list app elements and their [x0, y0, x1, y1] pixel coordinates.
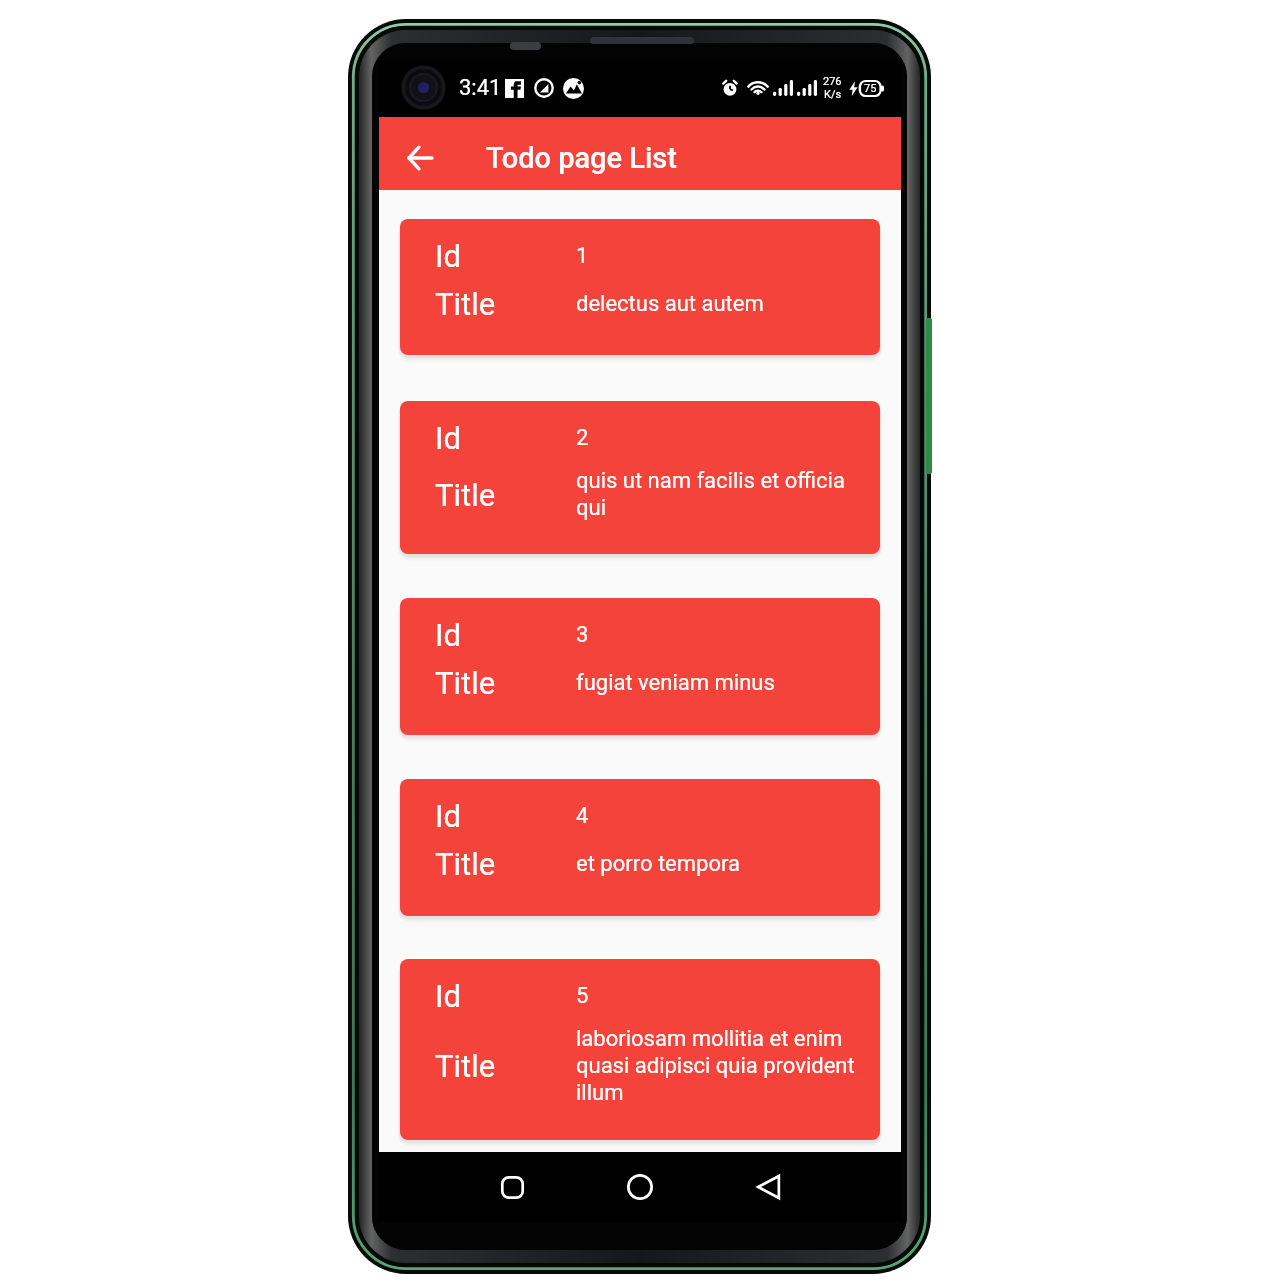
- staticText: 4: [576, 803, 589, 829]
- staticText: Title: [435, 846, 576, 882]
- button[interactable]: Id: [400, 959, 880, 1140]
- button[interactable]: Back: [738, 1152, 798, 1222]
- staticText: 3:41: [459, 75, 502, 101]
- staticText: laboriosam mollitia et enim quasi adipis…: [576, 1026, 868, 1106]
- staticText: 2: [576, 425, 589, 451]
- staticText: delectus aut autem: [576, 291, 764, 317]
- button[interactable]: Id: [400, 598, 880, 735]
- staticText: 5: [576, 983, 589, 1009]
- staticText: Id: [435, 238, 576, 274]
- staticText: Id: [435, 420, 576, 456]
- staticText: Title: [435, 1048, 576, 1084]
- button[interactable]: Id: [400, 401, 880, 554]
- staticText: Title: [435, 665, 576, 701]
- staticText: Title: [435, 477, 576, 513]
- staticText: et porro tempora: [576, 851, 740, 877]
- staticText: quis ut nam facilis et officia qui: [576, 468, 868, 521]
- button[interactable]: Recent apps: [482, 1152, 542, 1222]
- button[interactable]: Navigate up: [394, 132, 446, 184]
- staticText: Id: [435, 617, 576, 653]
- staticText: 3: [576, 622, 589, 648]
- staticText: Title: [435, 286, 576, 322]
- staticText: Todo page List: [486, 141, 677, 175]
- staticText: Id: [435, 978, 576, 1014]
- button[interactable]: Id: [400, 779, 880, 916]
- button[interactable]: Id: [400, 219, 880, 355]
- staticText: 276: [823, 75, 842, 88]
- staticText: K/s: [824, 88, 842, 101]
- staticText: 75: [864, 82, 877, 95]
- staticText: 1: [576, 243, 589, 269]
- button[interactable]: Home: [610, 1152, 670, 1222]
- staticText: Id: [435, 798, 576, 834]
- staticText: fugiat veniam minus: [576, 670, 775, 696]
